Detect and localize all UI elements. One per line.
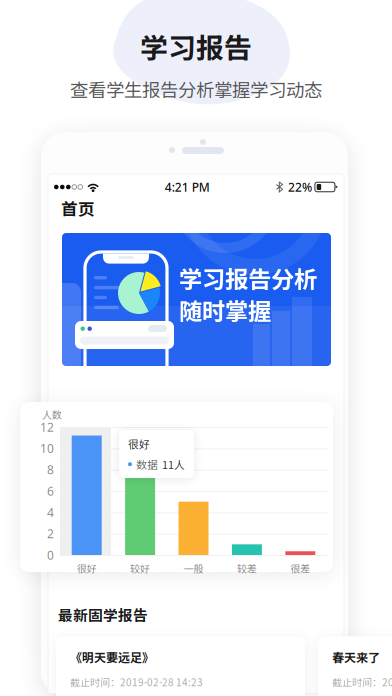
staticText: 《明天要远足》 [70,648,154,666]
staticText: 很差 [290,561,310,575]
staticText: 查看学生报告分析掌握学习动态 [70,75,322,102]
staticText: 很好 [77,561,97,575]
staticText: 0 [47,547,54,563]
staticText: 2 [47,526,54,542]
staticText: 4 [47,504,54,520]
staticText: 随时掌握 [179,293,271,327]
staticText: 学习报告分析 [179,261,317,295]
staticText: 学习报告 [140,26,252,66]
staticText: 一般 [183,561,203,575]
staticText: 22% [288,179,312,195]
staticText: 10 [40,440,54,456]
staticText: 8 [47,462,54,478]
staticText: 首页 [61,196,95,220]
staticText: 最新固学报告 [58,604,148,625]
staticText: 春天来了 [332,648,380,666]
staticText: 较好 [130,561,150,575]
staticText: 6 [47,483,54,499]
staticText: 12 [40,419,54,435]
button[interactable]: 学习报告分析 [62,233,331,366]
staticText: 很好 [128,436,150,451]
button[interactable]: 《明天要远足》 [56,636,305,696]
staticText: 11人 [162,456,185,472]
staticText: 人数 [42,407,62,421]
staticText: 较差 [237,561,257,575]
staticText: 数据 [136,456,158,472]
staticText: 4:21 PM [165,179,210,195]
staticText: 截止时间：2019-02-28 14:23 [70,675,203,689]
staticText: 截止时间：2019-03-05 10:00 [332,675,392,689]
button[interactable]: 春天来了 [318,636,392,696]
